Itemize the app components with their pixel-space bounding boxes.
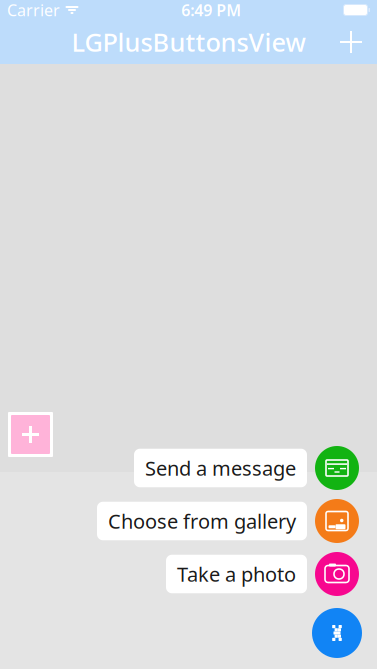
button[interactable]: Send a message — [315, 446, 359, 490]
staticText: LGPlusButtonsView — [71, 25, 305, 59]
button[interactable]: Choose from gallery — [97, 502, 307, 540]
staticText: Take a photo — [177, 561, 296, 587]
button[interactable]: Add — [8, 412, 53, 457]
staticText: Choose from gallery — [108, 508, 296, 534]
button[interactable]: Choose from gallery — [315, 499, 359, 543]
button[interactable]: Close — [312, 608, 362, 658]
button[interactable]: Take a photo — [315, 552, 359, 596]
staticText: Carrier — [7, 0, 60, 21]
button[interactable]: Add — [334, 25, 368, 59]
button[interactable]: Take a photo — [166, 555, 307, 593]
staticText: Send a message — [145, 455, 296, 481]
staticText: 6:49 PM — [181, 0, 241, 21]
button[interactable]: Send a message — [134, 449, 307, 487]
